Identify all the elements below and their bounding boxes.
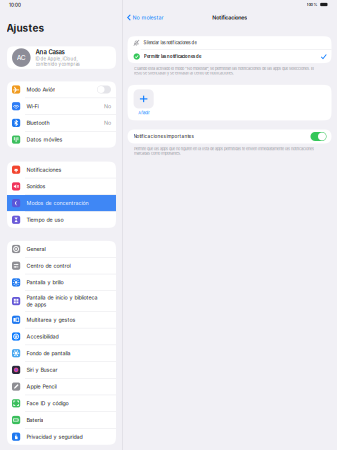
button[interactable]: Tiempo de uso <box>7 212 116 228</box>
staticText: Permitir las notificaciones de <box>144 54 201 59</box>
staticText: Wi-Fi <box>26 103 38 109</box>
staticText: 100 % <box>307 2 318 7</box>
button[interactable]: Privacidad y seguridad <box>7 429 116 445</box>
staticText: Silenciar las notificaciones de <box>143 40 196 45</box>
staticText: Face ID y código <box>26 400 68 407</box>
staticText: AC <box>17 54 26 62</box>
button[interactable]: Modo Avión <box>7 81 116 98</box>
button[interactable]: Pantalla y brillo <box>7 274 116 290</box>
button[interactable]: Centro de control <box>7 258 116 274</box>
button[interactable]: General <box>7 241 116 257</box>
staticText: No <box>104 103 111 109</box>
button[interactable]: Siri y Buscar <box>7 362 116 378</box>
staticText: Centro de control <box>26 262 70 269</box>
button[interactable]: Batería <box>7 412 116 428</box>
button[interactable]: Sonidos <box>7 178 116 194</box>
staticText: No <box>104 120 111 126</box>
staticText: Batería <box>26 417 43 423</box>
staticText: Siri y Buscar <box>26 367 57 373</box>
staticText: de apps <box>26 301 46 308</box>
staticText: Sonidos <box>26 183 45 190</box>
staticText: No molestar <box>132 14 163 21</box>
button[interactable]: Fondo de pantalla <box>7 345 116 361</box>
staticText: Ana Casas <box>36 48 65 56</box>
staticText: 10:00 <box>9 2 21 8</box>
button[interactable]: Modos de concentración <box>7 195 116 211</box>
staticText: Datos móviles <box>26 136 62 143</box>
staticText: Accesibilidad <box>26 333 58 340</box>
staticText: ID de Apple, iCloud, contenido y compras <box>36 56 80 67</box>
button[interactable]: Accesibilidad <box>7 328 116 345</box>
staticText: Notificaciones importantes <box>134 134 194 139</box>
staticText: Pantalla y brillo <box>26 279 63 286</box>
staticText: Apple Pencil <box>26 383 56 390</box>
button[interactable]: Multitarea y gestos <box>7 312 116 328</box>
staticText: Notificaciones <box>26 166 61 173</box>
staticText: Tiempo de uso <box>26 217 63 223</box>
staticText: Multitarea y gestos <box>26 317 75 323</box>
staticText: Bluetooth <box>26 120 49 126</box>
button[interactable]: Wi-Fi <box>7 98 116 114</box>
staticText: Privacidad y seguridad <box>26 433 82 440</box>
button[interactable]: Notificaciones importantes <box>128 129 331 143</box>
button[interactable]: Face ID y código <box>7 395 116 411</box>
button[interactable]: Añadir <box>128 85 160 120</box>
button[interactable]: Permitir las notificaciones de <box>128 50 331 63</box>
staticText: Permite que las apps que no figuren en l… <box>134 146 314 156</box>
staticText: Pantalla de inicio y biblioteca <box>26 294 97 301</box>
staticText: Modos de concentración <box>26 200 88 206</box>
staticText: General <box>26 246 45 252</box>
button[interactable]: Notificaciones <box>7 162 116 178</box>
button[interactable]: No molestar <box>125 13 165 22</box>
button[interactable]: Pantalla de inicio y biblioteca <box>7 291 116 311</box>
staticText: Modo Avión <box>26 86 55 93</box>
button[interactable]: Bluetooth <box>7 115 116 131</box>
staticText: Notificaciones <box>212 14 247 21</box>
button[interactable]: Datos móviles <box>7 131 116 148</box>
button[interactable]: Silenciar las notificaciones de <box>128 36 331 49</box>
button[interactable]: Apple Pencil <box>7 378 116 395</box>
staticText: Cuando está activado el modo “No molesta… <box>134 66 314 75</box>
staticText: Añadir <box>138 110 149 115</box>
staticText: Fondo de pantalla <box>26 350 70 356</box>
staticText: Ajustes <box>6 22 44 34</box>
button[interactable]: AC <box>7 46 116 69</box>
